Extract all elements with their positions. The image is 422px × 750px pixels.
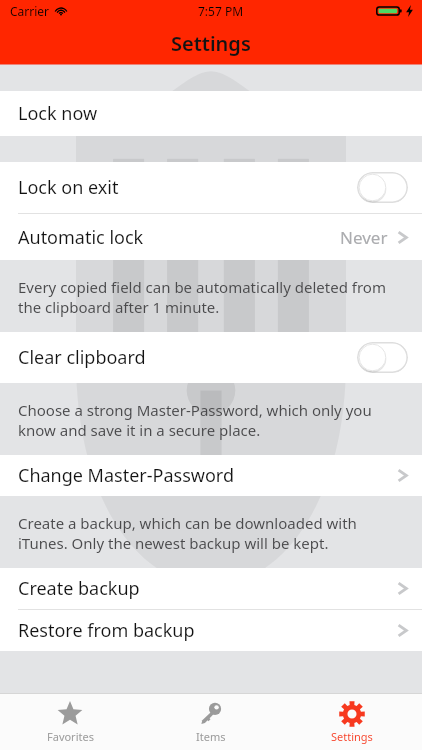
staticText: Lock now: [18, 101, 98, 126]
staticText: Lock on exit: [18, 175, 119, 200]
button[interactable]: Automatic lock: [0, 214, 422, 260]
button[interactable]: Lock now: [0, 91, 422, 136]
button[interactable]: Favorites: [0, 694, 140, 750]
staticText: 7:57 PM: [198, 3, 244, 19]
button[interactable]: Create backup: [0, 568, 422, 609]
staticText: Every copied field can be automatically …: [18, 277, 398, 317]
button[interactable]: Change Master-Password: [0, 455, 422, 496]
staticText: Carrier: [10, 3, 50, 19]
button[interactable]: Lock on exit: [0, 162, 422, 213]
staticText: Change Master-Password: [18, 463, 234, 488]
staticText: Choose a strong Master-Password, which o…: [18, 400, 398, 440]
staticText: Restore from backup: [18, 618, 195, 643]
button[interactable]: Settings: [281, 694, 422, 750]
staticText: Favorites: [47, 729, 94, 744]
staticText: Create a backup, which can be downloaded…: [18, 513, 398, 553]
staticText: Settings: [331, 729, 373, 744]
button[interactable]: Clear clipboard: [0, 332, 422, 383]
staticText: Create backup: [18, 576, 140, 601]
button[interactable]: Restore from backup: [0, 610, 422, 651]
staticText: Items: [196, 729, 226, 744]
staticText: Clear clipboard: [18, 345, 146, 370]
staticText: Automatic lock: [18, 225, 144, 250]
button[interactable]: Toggle off: [357, 342, 408, 373]
button[interactable]: Toggle off: [357, 172, 408, 203]
staticText: Settings: [171, 30, 251, 57]
staticText: Never: [340, 226, 388, 249]
button[interactable]: Items: [140, 694, 281, 750]
